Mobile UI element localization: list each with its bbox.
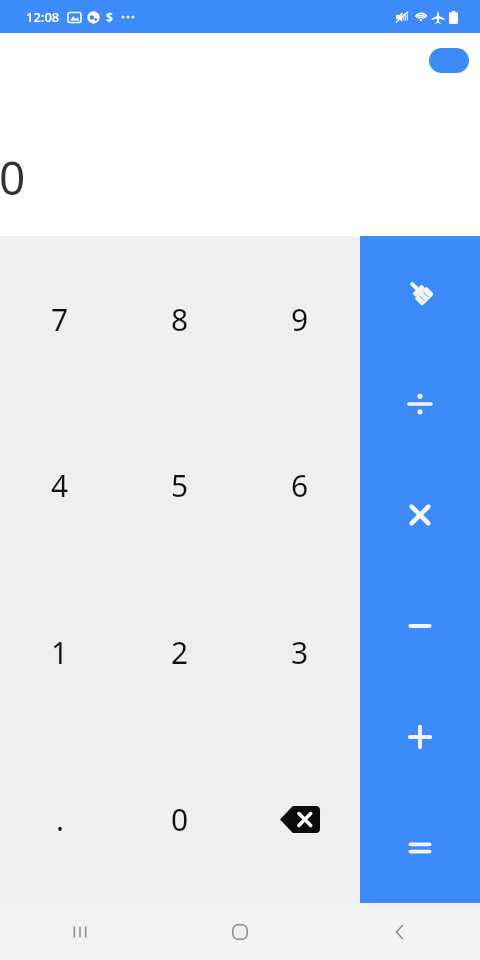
button[interactable]: Multiply	[360, 459, 480, 570]
button[interactable]: Equals	[360, 792, 480, 903]
button[interactable]: 7	[0, 236, 120, 402]
button[interactable]: 3	[240, 569, 360, 736]
button[interactable]: 0	[120, 736, 240, 903]
button[interactable]: 5	[120, 402, 240, 569]
button[interactable]: Minus	[360, 570, 480, 681]
staticText: 9	[291, 299, 309, 340]
staticText: 5	[171, 465, 189, 506]
button[interactable]: .	[0, 736, 120, 903]
button[interactable]: Plus	[360, 681, 480, 792]
staticText: 8	[171, 299, 189, 340]
button[interactable]: 9	[240, 236, 360, 402]
button[interactable]: 4	[0, 402, 120, 569]
staticText: 6	[291, 465, 309, 506]
button[interactable]: 6	[240, 402, 360, 569]
staticText: 12:08	[26, 8, 60, 26]
button[interactable]: 8	[120, 236, 240, 402]
button[interactable]: Recent apps	[0, 903, 160, 960]
button[interactable]: Mode	[429, 48, 469, 73]
staticText: $	[106, 9, 113, 25]
button[interactable]: Back	[320, 903, 480, 960]
staticText: 4	[51, 465, 69, 506]
staticText: 2	[171, 632, 189, 673]
staticText: .	[56, 799, 65, 840]
staticText: 3	[291, 632, 309, 673]
button[interactable]: clear	[360, 236, 480, 348]
staticText: 0	[171, 799, 189, 840]
button[interactable]: Backspace	[240, 736, 360, 903]
button[interactable]: Home	[160, 903, 320, 960]
staticText: 0	[0, 146, 26, 209]
button[interactable]: 1	[0, 569, 120, 736]
button[interactable]: Divide	[360, 348, 480, 459]
button[interactable]: 2	[120, 569, 240, 736]
staticText: 7	[51, 299, 69, 340]
staticText: 1	[51, 632, 69, 673]
